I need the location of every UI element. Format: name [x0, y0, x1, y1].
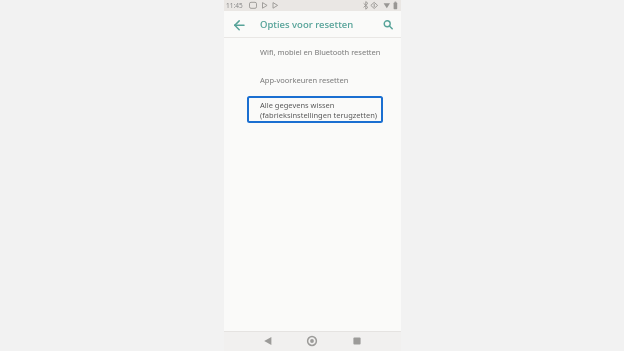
staticText: Opties voor resetten	[260, 18, 354, 31]
button[interactable]	[230, 15, 249, 34]
button[interactable]: Alle gegevens wissen	[247, 96, 383, 123]
button[interactable]: App-voorkeuren resetten	[224, 66, 401, 93]
button[interactable]	[379, 15, 397, 33]
staticText: Alle gegevens wissen	[260, 100, 335, 110]
button[interactable]	[349, 333, 365, 349]
staticText: Wifi, mobiel en Bluetooth resetten	[260, 47, 381, 57]
staticText: (fabrieksinstellingen terugzetten)	[260, 110, 378, 120]
button[interactable]: Wifi, mobiel en Bluetooth resetten	[224, 38, 401, 66]
button[interactable]	[260, 333, 276, 349]
button[interactable]	[304, 333, 320, 349]
staticText: App-voorkeuren resetten	[260, 75, 349, 85]
staticText: 11:45	[226, 1, 243, 10]
